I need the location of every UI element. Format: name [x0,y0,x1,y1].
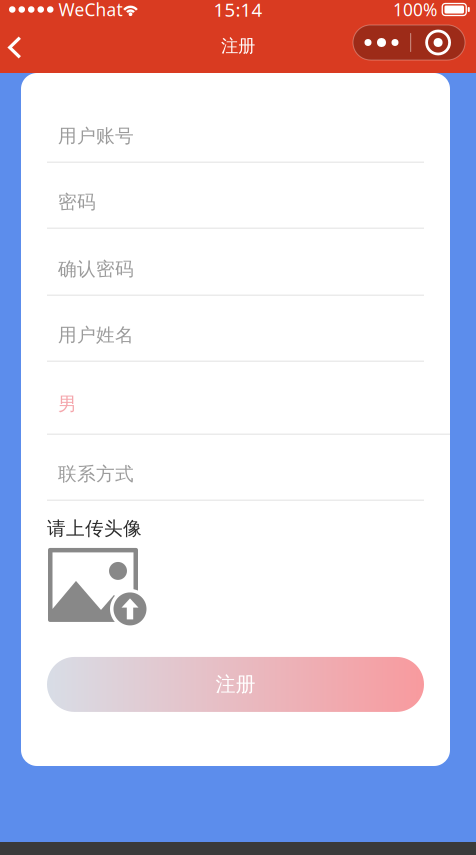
button[interactable]: 注册 [47,657,424,712]
staticText: 男 [58,393,77,415]
button[interactable]: 确认密码 [47,229,424,296]
staticText: 联系方式 [58,463,134,485]
staticText: 15:14 [213,0,262,22]
staticText: 确认密码 [58,258,134,280]
staticText: WeChat [58,0,122,21]
button[interactable]: 联系方式 [47,435,424,501]
button[interactable]: 用户姓名 [47,296,424,362]
button[interactable]: 男 [47,362,424,435]
button[interactable]: 上传头像 [47,548,148,630]
button[interactable]: 密码 [47,163,424,229]
staticText: 密码 [58,191,96,213]
button[interactable]: 用户账号 [47,96,424,163]
staticText: 100% [393,0,437,21]
button[interactable]: 更多 [353,28,465,63]
staticText: 注册 [221,35,255,57]
staticText: 用户账号 [58,125,134,147]
staticText: 用户姓名 [58,324,134,346]
button[interactable]: 返回 [8,24,38,68]
staticText: 注册 [215,672,255,697]
staticText: 请上传头像 [47,517,142,540]
